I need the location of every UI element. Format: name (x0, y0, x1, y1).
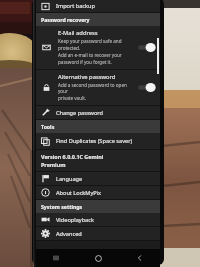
button[interactable]: E-Mail address (36, 26, 160, 69)
staticText: Keep your password safe and (58, 38, 122, 44)
staticText: Add a second password to open your (58, 82, 136, 94)
button[interactable]: Toggle (138, 43, 156, 52)
button[interactable]: Import backup (36, 0, 160, 12)
staticText: Find Duplicates (Space saver) (56, 137, 133, 145)
button[interactable]: Home (90, 250, 106, 266)
staticText: Change password (56, 109, 103, 117)
staticText: E-Mail address (58, 29, 98, 37)
button[interactable]: Find Duplicates (Space saver) (36, 133, 160, 149)
staticText: Tools (41, 123, 55, 130)
button[interactable]: Alternative password (36, 70, 160, 105)
staticText: Add an e-mail to recover your (58, 52, 122, 58)
button[interactable]: About LockMyPix (36, 186, 160, 199)
staticText: Language (56, 175, 83, 183)
staticText: password if you forget it. (58, 59, 112, 65)
staticText: Premium (41, 161, 66, 168)
staticText: protected. (58, 45, 81, 51)
staticText: About LockMyPix (56, 189, 102, 197)
staticText: Advanced (56, 230, 82, 238)
staticText: Import backup (56, 2, 95, 10)
staticText: Version 6.0.0.1C Gemini (41, 153, 104, 160)
button[interactable]: Recents (48, 250, 64, 266)
button[interactable]: Advanced (36, 227, 160, 240)
button[interactable]: Language (36, 172, 160, 185)
staticText: Videoplayback (56, 216, 94, 224)
button[interactable]: Back (132, 250, 148, 266)
button[interactable]: Change password (36, 106, 160, 119)
button[interactable]: Toggle (138, 83, 156, 92)
staticText: Alternative password (58, 73, 116, 81)
staticText: private vault. (58, 95, 87, 101)
staticText: System settings (41, 203, 83, 210)
button[interactable]: Videoplayback (36, 213, 160, 226)
staticText: Password recovery (41, 16, 90, 23)
